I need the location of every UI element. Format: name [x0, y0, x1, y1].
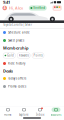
- staticText: Ride history: [8, 62, 25, 65]
- button[interactable]: Promotions: [53, 5, 62, 11]
- staticText: Promo codes: [8, 85, 26, 88]
- staticText: Home: [4, 113, 12, 116]
- button[interactable]: Saved places: [0, 36, 64, 44]
- staticText: 9:41: [3, 0, 10, 5]
- staticText: Deals: [3, 68, 13, 74]
- button[interactable]: Points: [32, 52, 44, 58]
- button[interactable]: Account: [48, 106, 64, 117]
- staticText: Explore: [19, 113, 29, 116]
- button[interactable]: Promo codes: [0, 82, 64, 90]
- staticText: Membership: [3, 45, 29, 51]
- staticText: Hi, Alex: [7, 5, 23, 11]
- staticText: Gold: [7, 54, 14, 57]
- button[interactable]: Explore: [16, 106, 32, 117]
- button[interactable]: Home: [0, 106, 16, 117]
- staticText: Inbox: [36, 113, 44, 116]
- button[interactable]: Today's offers: [0, 74, 64, 82]
- staticText: A: [4, 6, 6, 10]
- button[interactable]: Schedule a ride: [0, 28, 64, 36]
- staticText: Toyota Corolla | Silver: [3, 23, 32, 26]
- button[interactable]: Ride history: [0, 59, 64, 67]
- staticText: Schedule a ride: [8, 31, 30, 34]
- button[interactable]: Gold: [3, 52, 15, 58]
- staticText: Points: [33, 54, 42, 57]
- staticText: Today's offers: [8, 77, 26, 80]
- staticText: Saved places: [8, 39, 24, 42]
- button[interactable]: Account: [2, 6, 7, 10]
- staticText: Verified: [33, 6, 45, 10]
- staticText: Account: [50, 113, 61, 116]
- button[interactable]: Inbox: [32, 106, 48, 117]
- button[interactable]: Verified: [29, 5, 47, 10]
- staticText: Rewards: [19, 54, 29, 57]
- button[interactable]: Rewards: [17, 52, 30, 58]
